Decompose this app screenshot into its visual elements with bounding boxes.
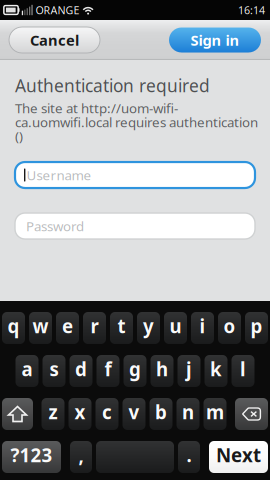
button[interactable]: v (122, 398, 145, 430)
button[interactable]: f (96, 355, 119, 387)
button[interactable]: k (204, 355, 227, 387)
button[interactable]: m (203, 398, 226, 430)
staticText: 16:14 (238, 3, 265, 17)
staticText: i (199, 314, 205, 338)
button[interactable]: s (42, 355, 65, 387)
button[interactable]: ?123 (2, 441, 61, 473)
button[interactable]: , (70, 441, 92, 473)
button[interactable]: Sign in (169, 27, 261, 52)
staticText: The site at http://uom-wifi- (15, 99, 178, 117)
button[interactable]: d (69, 355, 92, 387)
staticText: v (128, 400, 139, 424)
button[interactable]: b (149, 398, 172, 430)
button[interactable]: u (164, 312, 187, 344)
staticText: p (250, 314, 262, 338)
staticText: ca.uomwifi.local requires authentication (15, 113, 258, 131)
staticText: x (74, 400, 85, 424)
button[interactable]: g (123, 355, 146, 387)
button[interactable]: c (95, 398, 118, 430)
staticText: m (206, 400, 224, 424)
staticText: k (210, 357, 222, 381)
staticText: l (240, 357, 246, 381)
button[interactable]: n (176, 398, 199, 430)
button[interactable]: y (137, 312, 160, 344)
staticText: w (32, 314, 48, 338)
staticText: Cancel (30, 30, 79, 50)
staticText: y (143, 314, 154, 338)
button[interactable]: a (15, 355, 38, 387)
staticText: c (102, 400, 112, 424)
button[interactable]: r (83, 312, 106, 344)
staticText: Authentication required (15, 74, 210, 97)
staticText: a (21, 357, 32, 381)
button[interactable]: i (191, 312, 214, 344)
staticText: u (169, 314, 181, 338)
staticText: Sign in (190, 30, 239, 50)
button[interactable] (96, 441, 174, 473)
button[interactable]: p (245, 312, 268, 344)
staticText: t (117, 314, 125, 338)
staticText: Username (26, 166, 91, 184)
staticText: b (155, 400, 167, 424)
staticText: z (48, 400, 57, 424)
staticText: e (62, 314, 73, 338)
staticText: h (156, 357, 168, 381)
button[interactable]: x (68, 398, 91, 430)
button[interactable]: t (110, 312, 133, 344)
staticText: o (223, 314, 235, 338)
button[interactable]: Cancel (9, 27, 100, 53)
staticText: g (129, 357, 141, 381)
staticText: . (186, 443, 191, 467)
staticText: s (49, 357, 58, 381)
button[interactable]: o (218, 312, 241, 344)
button[interactable]: w (29, 312, 52, 344)
staticText: , (78, 443, 83, 467)
staticText: r (90, 314, 98, 338)
button[interactable]: Delete (235, 398, 268, 430)
button[interactable]: e (56, 312, 79, 344)
staticText: Next (216, 443, 261, 467)
staticText: n (182, 400, 194, 424)
button[interactable]: q (2, 312, 25, 344)
button[interactable]: l (231, 355, 254, 387)
staticText: Password (26, 217, 84, 235)
staticText: ORANGE (35, 3, 79, 17)
button[interactable]: Username (15, 162, 255, 188)
button[interactable]: z (41, 398, 64, 430)
button[interactable]: h (150, 355, 173, 387)
staticText: ?123 (10, 443, 52, 467)
button[interactable]: Next (209, 441, 268, 473)
button[interactable]: j (177, 355, 200, 387)
staticText: j (186, 357, 192, 381)
staticText: q (7, 314, 19, 338)
button[interactable]: . (178, 441, 200, 473)
staticText (132, 443, 137, 467)
button[interactable]: Password (15, 213, 255, 239)
button[interactable]: Shift (2, 398, 33, 430)
staticText: d (75, 357, 87, 381)
staticText: () (15, 127, 23, 145)
staticText: f (104, 357, 111, 381)
